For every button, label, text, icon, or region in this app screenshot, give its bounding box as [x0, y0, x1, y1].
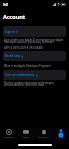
button[interactable]: Videos: [17, 127, 34, 140]
button[interactable]: Turn on notifications: [3, 70, 66, 80]
staticText: Discover: [4, 136, 14, 139]
other: Programs: [41, 129, 47, 135]
staticText: Videos: [22, 136, 30, 139]
other: Account: [58, 129, 64, 135]
staticText: Account: [3, 13, 26, 21]
staticText: Programs: [38, 136, 49, 139]
staticText: Enroll now: [5, 54, 20, 58]
button[interactable]: Discover: [0, 127, 17, 140]
other: Discover: [6, 129, 12, 135]
staticText: Account: [56, 136, 65, 139]
button[interactable]: Enroll now: [3, 51, 66, 61]
staticText: APPLE DEVELOPER PROGRAM: [4, 46, 43, 50]
button[interactable]: Programs: [35, 127, 52, 140]
staticText: Sign in: [5, 30, 15, 34]
staticText: 9:41: [3, 3, 9, 7]
staticText: Receive updates about new technologies, …: [4, 81, 55, 87]
staticText: Turn on notifications: [5, 73, 35, 77]
button[interactable]: Account: [52, 127, 69, 140]
other: Videos: [23, 129, 29, 135]
staticText: What is the Apple Developer Program?: [4, 64, 51, 68]
button[interactable]: Sign in: [3, 26, 66, 37]
staticText: Sign in with your Apple ID to manage you…: [4, 38, 64, 44]
